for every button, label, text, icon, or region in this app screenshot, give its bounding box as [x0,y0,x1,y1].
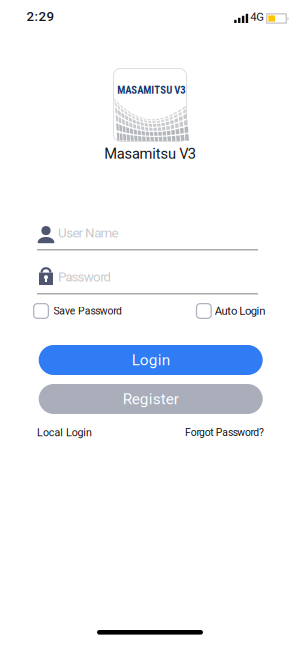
staticText: Register [123,390,179,408]
staticText: Password [58,269,111,285]
button[interactable]: Auto Login [196,303,265,319]
staticText: Save Password [53,305,122,317]
staticText: MASAMITSU V3 [117,84,185,96]
staticText: Auto Login [215,304,265,318]
staticText: Masamitsu V3 [104,145,196,162]
staticText: 2:29 [26,9,54,24]
button[interactable]: Register [39,384,263,414]
staticText: Forgot Password? [185,426,264,439]
button[interactable]: Login [39,345,263,375]
staticText: User Name [58,225,119,241]
button[interactable]: Forgot Password? [185,426,264,439]
staticText: Login [132,351,170,369]
staticText: Local Login [37,426,92,439]
button[interactable]: Save Password [33,303,122,319]
button[interactable]: Local Login [37,426,92,439]
staticText: 4G [250,10,264,24]
